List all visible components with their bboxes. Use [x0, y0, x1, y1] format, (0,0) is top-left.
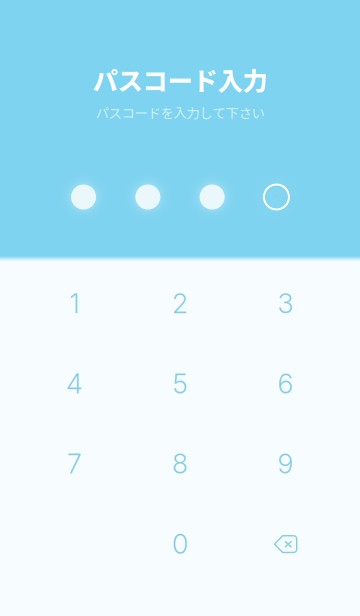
staticText: 4	[66, 368, 83, 400]
button[interactable]: 3	[233, 263, 338, 344]
button[interactable]: 7	[22, 424, 127, 504]
staticText: 6	[278, 368, 294, 400]
button[interactable]: 5	[127, 344, 233, 424]
staticText: 9	[278, 448, 294, 480]
staticText: 5	[172, 368, 187, 400]
button[interactable]: 1	[22, 263, 127, 344]
staticText: 2	[172, 287, 188, 320]
staticText: 3	[278, 287, 294, 320]
staticText: パスコード入力	[92, 61, 267, 98]
button[interactable]: 0	[127, 504, 233, 584]
staticText: 0	[172, 528, 188, 560]
button[interactable]: 9	[233, 424, 338, 504]
staticText: パスコードを入力して下さい	[95, 103, 264, 122]
button[interactable]: 2	[127, 263, 233, 344]
button[interactable]: 4	[22, 344, 127, 424]
staticText: 1	[69, 287, 79, 320]
button[interactable]: 6	[233, 344, 338, 424]
button[interactable]: Delete	[233, 504, 338, 584]
button[interactable]: 8	[127, 424, 233, 504]
staticText: 8	[172, 448, 188, 480]
staticText: 7	[67, 448, 82, 480]
